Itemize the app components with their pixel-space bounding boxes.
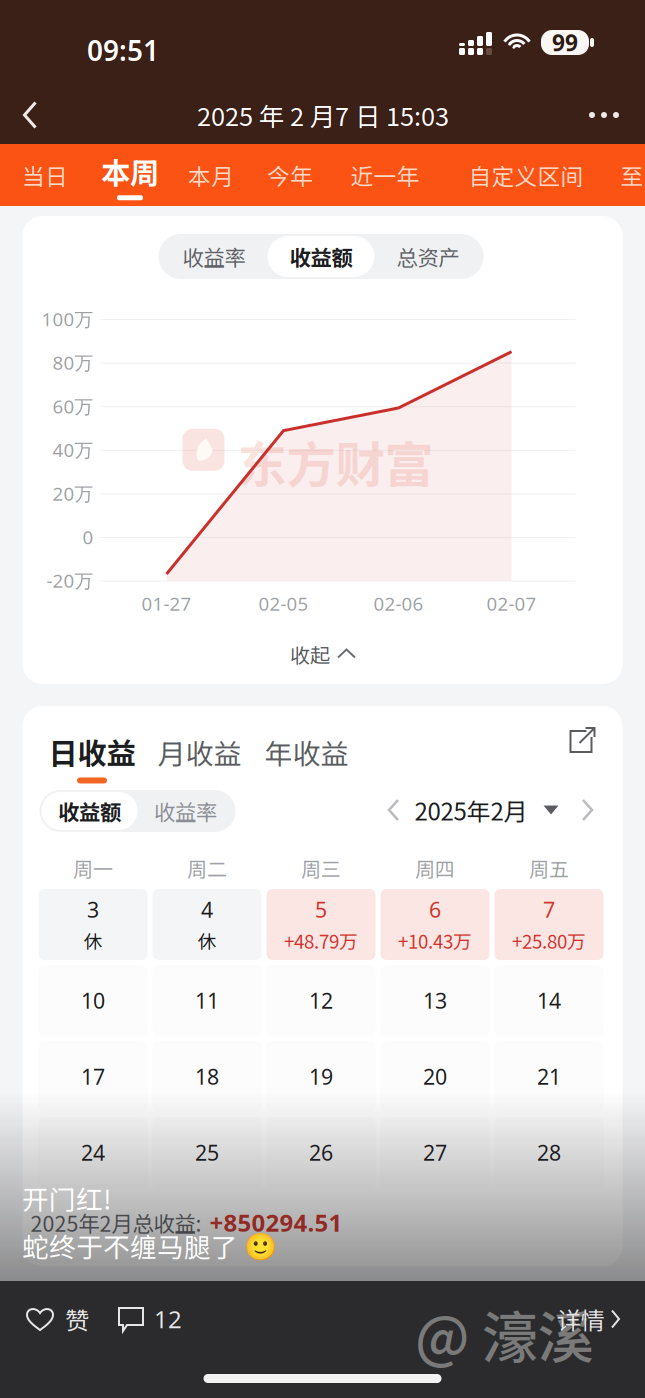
button[interactable]: 6: [380, 889, 489, 960]
button[interactable]: 上一月: [374, 789, 414, 831]
staticText: 25: [195, 1138, 219, 1167]
staticText: 20: [423, 1062, 447, 1091]
button[interactable]: 收益率: [160, 236, 267, 277]
staticText: 休: [197, 927, 216, 954]
staticText: 周四: [415, 853, 455, 882]
button[interactable]: 收益额: [267, 236, 374, 277]
button[interactable]: 3: [38, 889, 147, 960]
staticText: 11: [195, 986, 219, 1015]
staticText: 本周: [101, 150, 159, 192]
staticText: 总资产: [396, 241, 459, 272]
staticText: 近一年: [350, 159, 419, 191]
staticText: 东方财富: [237, 426, 433, 497]
staticText: 日收益: [48, 730, 135, 772]
button[interactable]: 更多: [576, 92, 632, 138]
button[interactable]: 12: [266, 965, 375, 1036]
staticText: +48.79万: [284, 927, 358, 954]
button[interactable]: 收益率: [137, 792, 233, 830]
button[interactable]: 收起: [262, 636, 382, 672]
button[interactable]: 19: [266, 1041, 375, 1112]
staticText: 02-06: [373, 591, 423, 616]
button[interactable]: 收益额: [41, 792, 137, 830]
button[interactable]: 13: [380, 965, 489, 1036]
staticText: 18: [195, 1062, 219, 1091]
button[interactable]: 近一年: [328, 145, 442, 205]
staticText: 收益率: [182, 241, 245, 272]
staticText: @ 濠溪: [415, 1293, 594, 1374]
button[interactable]: 分享: [568, 726, 596, 754]
staticText: 13: [423, 986, 447, 1015]
staticText: 3: [87, 895, 99, 924]
staticText: 02-05: [258, 591, 308, 616]
button[interactable]: 26: [266, 1117, 375, 1188]
button[interactable]: 日收益: [48, 730, 135, 783]
staticText: 收益额: [289, 241, 352, 272]
staticText: 80万: [52, 350, 93, 375]
button[interactable]: 25: [152, 1117, 261, 1188]
button[interactable]: 详情: [557, 1293, 623, 1345]
button[interactable]: 年收益: [258, 728, 354, 776]
button[interactable]: 自定义区间: [442, 145, 610, 205]
staticText: 收益额: [58, 796, 121, 826]
staticText: 5: [315, 895, 327, 924]
button[interactable]: 28: [494, 1117, 603, 1188]
staticText: 12: [309, 986, 333, 1015]
button[interactable]: 本周: [90, 144, 170, 206]
button[interactable]: 赞: [26, 1293, 89, 1345]
button[interactable]: 7: [494, 889, 603, 960]
staticText: 27: [423, 1138, 447, 1167]
button[interactable]: 当日: [0, 145, 90, 205]
button[interactable]: 10: [38, 965, 147, 1036]
button[interactable]: 17: [38, 1041, 147, 1112]
staticText: -20万: [46, 568, 93, 593]
staticText: 至: [620, 159, 643, 191]
button[interactable]: 27: [380, 1117, 489, 1188]
button[interactable]: 11: [152, 965, 261, 1036]
staticText: 7: [543, 895, 555, 924]
staticText: 2025 年 2 月7 日 15:03: [197, 97, 449, 133]
staticText: 收益率: [154, 796, 217, 826]
staticText: 0: [82, 524, 93, 550]
staticText: 01-27: [141, 591, 191, 616]
button[interactable]: 4: [152, 889, 261, 960]
staticText: 收起: [290, 639, 330, 668]
staticText: 24: [81, 1138, 105, 1167]
staticText: 详情: [557, 1302, 605, 1336]
staticText: 蛇终于不缠马腿了 🙂: [22, 1226, 277, 1265]
staticText: 今年: [267, 159, 313, 191]
button[interactable]: 本月: [170, 145, 252, 205]
staticText: +25.80万: [512, 927, 586, 954]
staticText: 6: [429, 895, 441, 924]
staticText: 周二: [187, 853, 227, 882]
button[interactable]: 5: [266, 889, 375, 960]
button[interactable]: 返回: [8, 92, 54, 138]
button[interactable]: 14: [494, 965, 603, 1036]
staticText: 100万: [41, 306, 93, 332]
staticText: 2025年2月总收益:: [30, 1207, 201, 1238]
button[interactable]: 至: [610, 145, 645, 205]
button[interactable]: 18: [152, 1041, 261, 1112]
button[interactable]: 12: [117, 1293, 182, 1345]
staticText: 26: [309, 1138, 333, 1167]
staticText: 周三: [301, 853, 341, 882]
staticText: 10: [81, 986, 105, 1015]
staticText: 周五: [529, 853, 569, 882]
staticText: 28: [537, 1138, 561, 1167]
button[interactable]: 月收益: [151, 728, 247, 776]
staticText: 赞: [65, 1302, 89, 1336]
staticText: 开门红!: [22, 1179, 112, 1217]
button[interactable]: 21: [494, 1041, 603, 1112]
button[interactable]: 20: [380, 1041, 489, 1112]
staticText: +850294.51: [209, 1206, 342, 1239]
staticText: 19: [309, 1062, 333, 1091]
staticText: 月收益: [157, 732, 241, 772]
button[interactable]: 24: [38, 1117, 147, 1188]
staticText: 60万: [52, 393, 93, 419]
staticText: 自定义区间: [468, 159, 583, 191]
staticText: +10.43万: [398, 927, 472, 954]
button[interactable]: 总资产: [374, 236, 481, 277]
button[interactable]: 今年: [252, 145, 328, 205]
staticText: 2025年2月: [414, 793, 527, 827]
button[interactable]: 下一月: [568, 789, 608, 831]
staticText: 14: [537, 986, 561, 1015]
